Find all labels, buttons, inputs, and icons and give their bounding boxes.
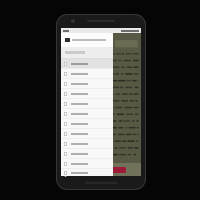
button[interactable]: Open page bbox=[61, 89, 113, 98]
button[interactable]: Open page bbox=[61, 59, 113, 68]
button[interactable]: Open page bbox=[61, 139, 113, 148]
button[interactable]: Search pages bbox=[61, 47, 113, 58]
button[interactable]: Open page bbox=[61, 99, 113, 108]
button[interactable]: Open page bbox=[61, 79, 113, 88]
button[interactable] bbox=[61, 33, 113, 47]
button[interactable]: Open page bbox=[61, 109, 113, 118]
button[interactable]: Open page bbox=[61, 169, 113, 176]
button[interactable]: Open page bbox=[61, 159, 113, 168]
button[interactable]: Open page bbox=[61, 69, 113, 78]
button[interactable]: Open page bbox=[61, 119, 113, 128]
button[interactable]: Open page bbox=[61, 149, 113, 158]
button[interactable]: Bookmark page bbox=[108, 167, 126, 173]
button[interactable]: Open page bbox=[61, 129, 113, 138]
